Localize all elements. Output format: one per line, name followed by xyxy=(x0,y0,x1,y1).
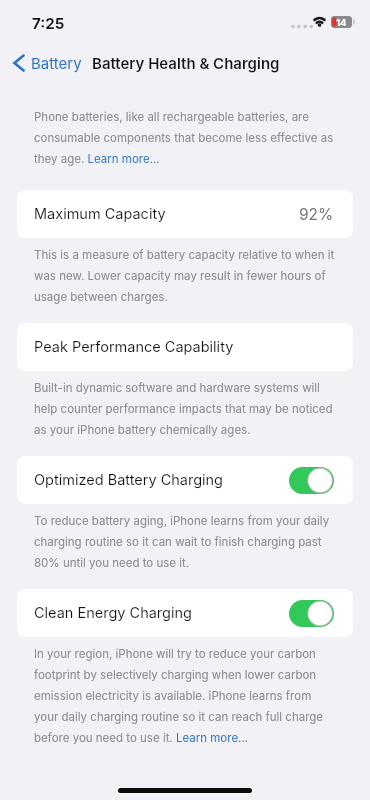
button[interactable]: Toggle on xyxy=(289,600,334,627)
staticText: Phone batteries, like all rechargeable b… xyxy=(34,110,336,166)
staticText: Peak Performance Capability xyxy=(34,338,234,356)
staticText: Optimized Battery Charging xyxy=(34,471,224,489)
button[interactable]: Battery xyxy=(0,50,88,76)
button[interactable]: Toggle on xyxy=(289,467,334,494)
staticText: To reduce battery aging, iPhone learns f… xyxy=(34,514,336,570)
staticText: This is a measure of battery capacity re… xyxy=(34,248,336,304)
staticText: Battery xyxy=(31,54,82,72)
button[interactable]: Peak Performance Capability xyxy=(17,323,353,371)
staticText: Clean Energy Charging xyxy=(34,604,192,622)
staticText: In your region, iPhone will try to reduc… xyxy=(34,647,336,745)
staticText: Built-in dynamic software and hardware s… xyxy=(34,381,336,437)
staticText: 92% xyxy=(299,205,334,224)
staticText: Battery Health & Charging xyxy=(92,54,280,72)
button[interactable]: Maximum Capacity xyxy=(17,190,353,238)
button[interactable]: Optimized Battery Charging xyxy=(17,456,353,504)
button[interactable]: Clean Energy Charging xyxy=(17,589,353,637)
staticText: Maximum Capacity xyxy=(34,205,166,223)
staticText: 7:25 xyxy=(32,14,65,32)
staticText: 14 xyxy=(336,17,347,28)
